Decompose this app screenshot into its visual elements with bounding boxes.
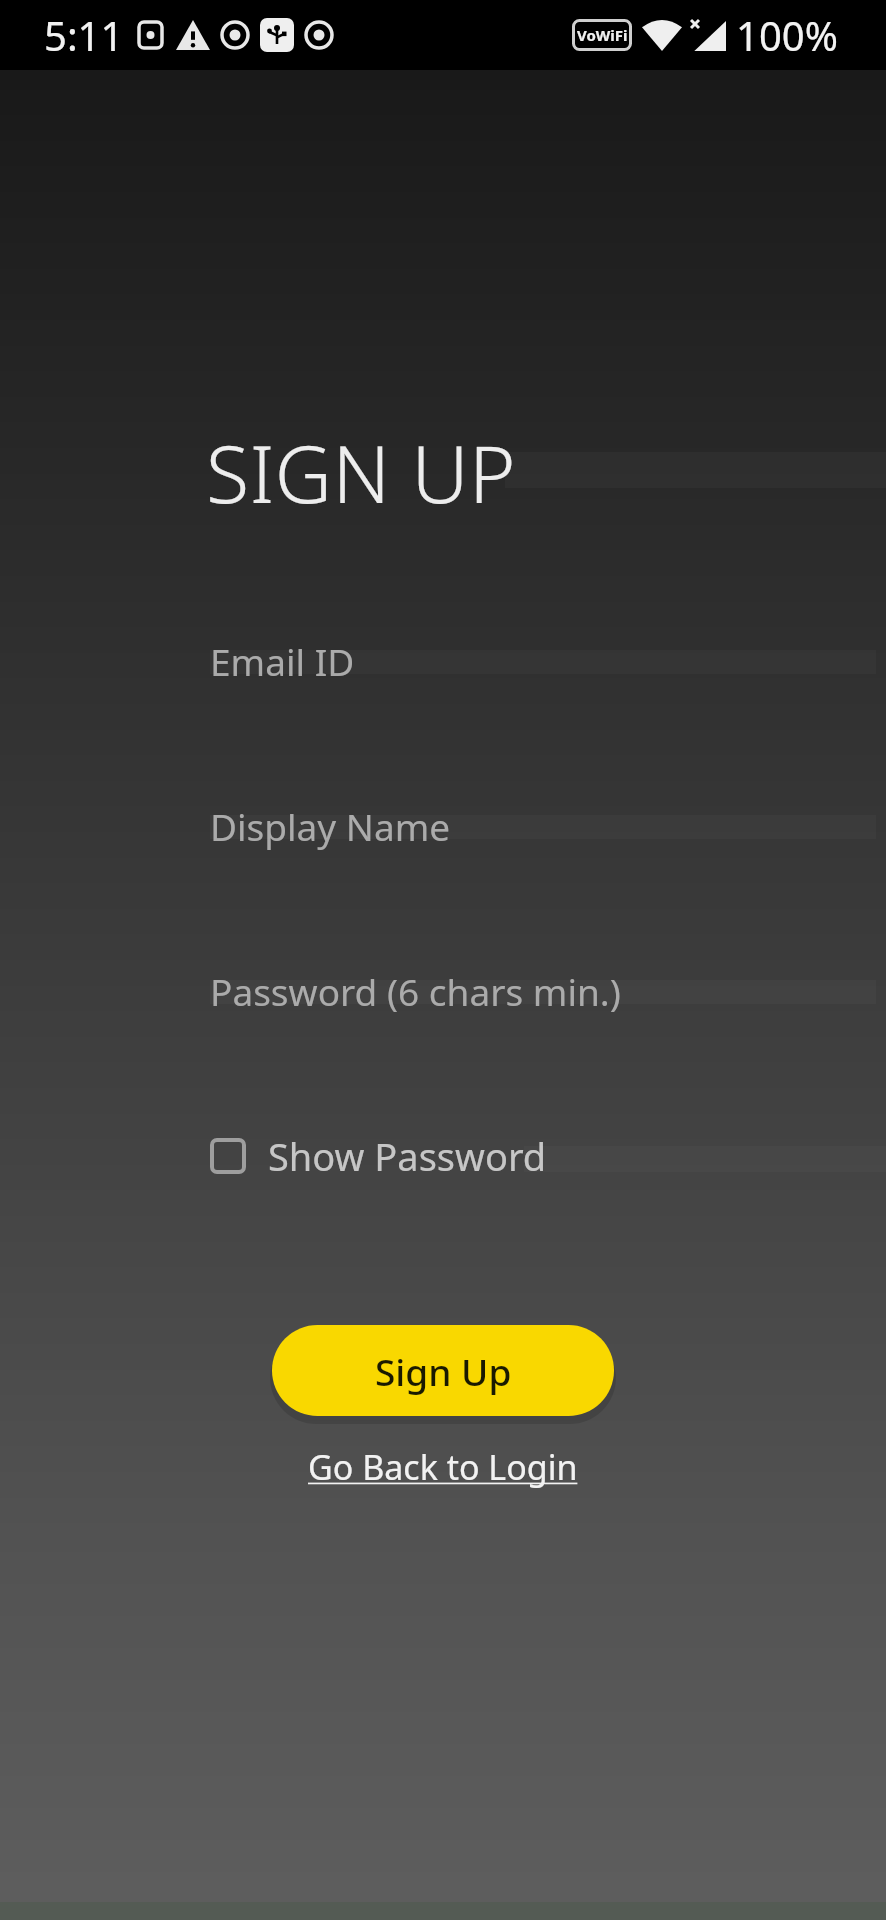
staticText: Sign Up	[375, 1346, 512, 1396]
button[interactable]: Show Password	[210, 1130, 547, 1182]
staticText: 100%	[736, 8, 838, 62]
staticText: Password (6 chars min.)	[210, 966, 621, 1016]
button[interactable]: Sign Up	[272, 1325, 614, 1416]
button[interactable]: Go Back to Login	[308, 1444, 578, 1490]
staticText: SIGN UP	[206, 419, 517, 527]
staticText: VoWiFi	[577, 25, 628, 45]
staticText: 5:11	[44, 8, 124, 62]
staticText: Email ID	[210, 636, 355, 686]
staticText: Show Password	[268, 1130, 547, 1182]
staticText: Display Name	[210, 801, 451, 851]
